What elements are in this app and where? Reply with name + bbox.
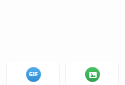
staticText: GIF [29, 71, 38, 78]
button[interactable]: Insert GIF [7, 62, 59, 85]
button[interactable]: Insert photo [66, 62, 118, 85]
